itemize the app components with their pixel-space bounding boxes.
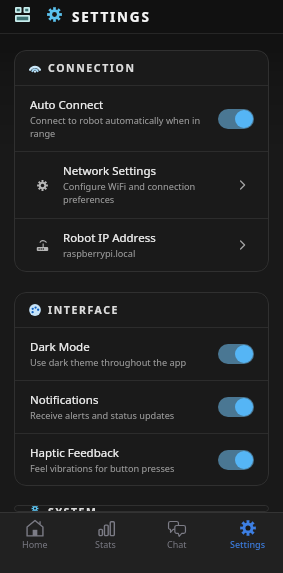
button[interactable]: Auto Connect [14,86,269,151]
button[interactable]: Home [0,519,70,550]
button[interactable]: Toggle [218,397,254,417]
staticText: INTERFACE [48,303,120,317]
staticText: Notifications [30,392,99,408]
staticText: Stats [95,538,116,550]
button[interactable]: Stats [70,519,141,550]
staticText: Home [22,538,48,550]
button[interactable]: Robot IP Address [14,219,269,272]
staticText: Settings [230,538,266,550]
staticText: Receive alerts and status updates [30,409,175,422]
staticText: CONNECTION [48,61,136,75]
button[interactable]: Settings [212,519,283,550]
staticText: Network Settings [63,163,157,179]
button[interactable]: Notifications [14,381,269,433]
staticText: Dark Mode [30,339,90,355]
staticText: Robot IP Address [63,230,156,246]
button[interactable]: Settings [44,4,64,24]
staticText: Configure WiFi and connection preference… [63,180,232,206]
staticText: Connect to robot automatically when in r… [30,114,208,140]
button[interactable]: Haptic Feedback [14,434,269,486]
staticText: Feel vibrations for button presses [30,462,175,475]
button[interactable]: Toggle [218,450,254,470]
staticText: Chat [167,538,187,550]
button[interactable]: Network Settings [14,152,269,218]
button[interactable]: Dashboard [12,4,32,24]
button[interactable]: Toggle [218,344,254,364]
button[interactable]: Toggle [218,109,254,129]
staticText: SYSTEM [48,505,98,512]
staticText: Auto Connect [30,97,104,113]
staticText: Haptic Feedback [30,445,119,461]
staticText: raspberrypi.local [63,247,136,260]
button[interactable]: Chat [141,519,212,550]
button[interactable]: Dark Mode [14,328,269,380]
staticText: Use dark theme throughout the app [30,356,187,369]
staticText: SETTINGS [72,8,151,26]
